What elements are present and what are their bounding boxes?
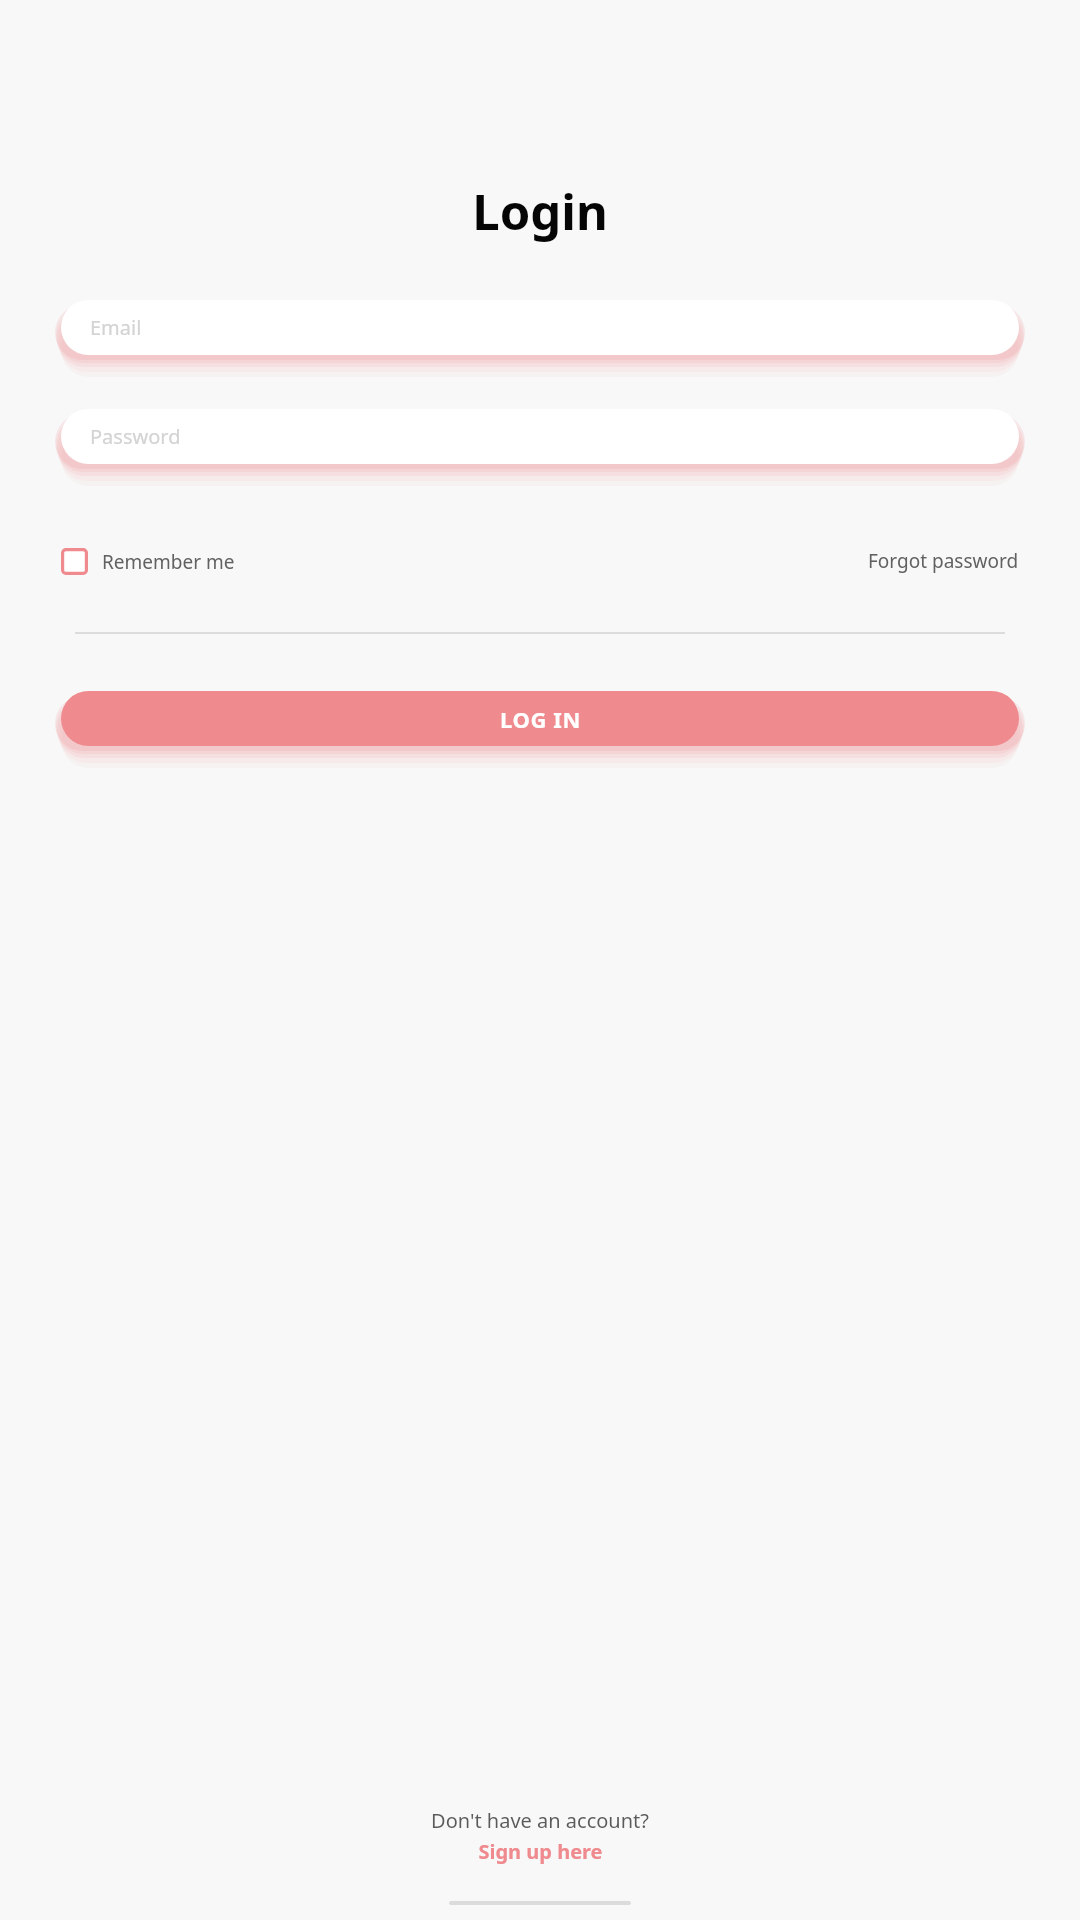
staticText: Login <box>0 178 1080 245</box>
staticText: Forgot password <box>868 548 1019 574</box>
staticText: Sign up here <box>478 1838 603 1865</box>
staticText: LOG IN <box>500 704 581 734</box>
button[interactable]: Remember me <box>61 548 235 575</box>
staticText: Password <box>90 423 181 450</box>
button[interactable]: Sign up here <box>478 1838 603 1865</box>
button[interactable]: Forgot password <box>868 548 1019 574</box>
staticText: Don't have an account? <box>431 1807 649 1834</box>
button[interactable]: Email <box>61 300 1019 381</box>
button[interactable]: LOG IN <box>61 691 1019 772</box>
button[interactable]: Password <box>61 409 1019 490</box>
staticText: Email <box>90 314 142 341</box>
staticText: Remember me <box>102 549 235 575</box>
